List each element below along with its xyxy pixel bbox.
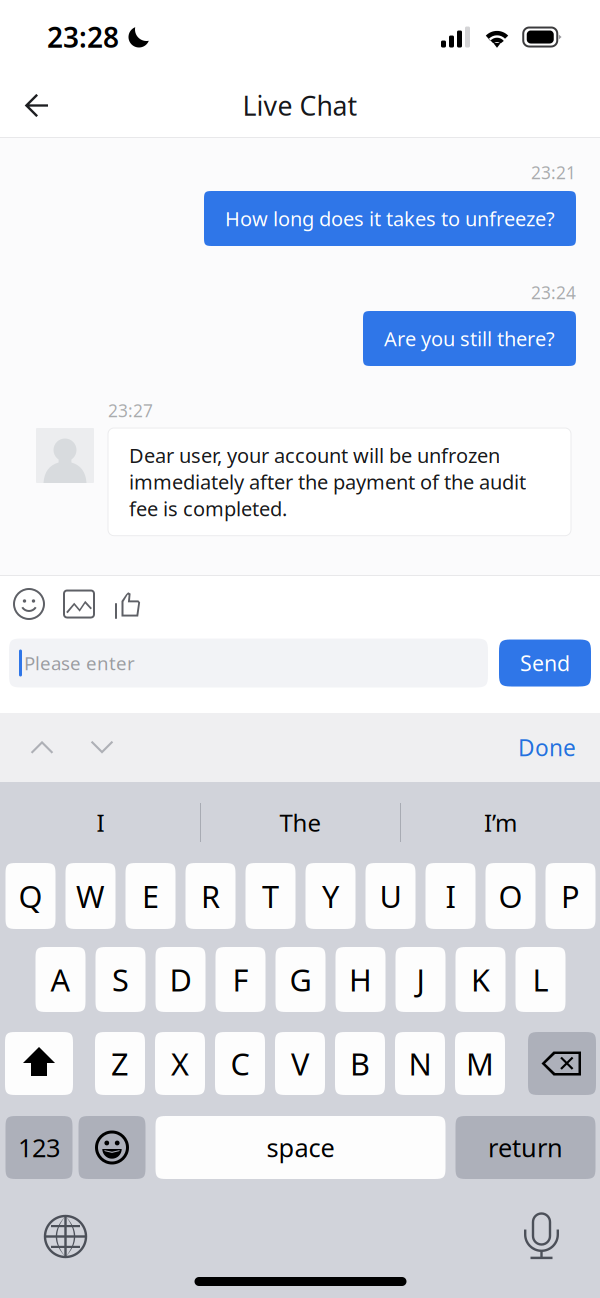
staticText: A (50, 959, 70, 1000)
staticText: Done (518, 732, 576, 762)
button[interactable]: X (155, 1032, 205, 1095)
button[interactable]: D (155, 947, 205, 1012)
staticText: Y (322, 876, 339, 916)
staticText: 23:27 (108, 399, 153, 422)
staticText: V (291, 1043, 309, 1084)
staticText: return (488, 1131, 563, 1164)
button[interactable]: H (335, 947, 385, 1012)
button[interactable]: Like (113, 588, 145, 620)
button[interactable]: K (455, 947, 505, 1012)
staticText: Z (111, 1043, 129, 1084)
button[interactable]: Previous field (26, 731, 58, 763)
button[interactable]: M (455, 1032, 505, 1095)
button[interactable]: P (545, 863, 595, 929)
staticText: W (76, 876, 105, 916)
staticText: D (169, 959, 191, 1000)
staticText: Please enter (24, 651, 135, 675)
staticText: U (379, 876, 401, 916)
staticText: C (230, 1043, 249, 1084)
button[interactable]: return (455, 1116, 595, 1179)
button[interactable]: T (245, 863, 295, 929)
button[interactable]: Back (14, 83, 62, 127)
staticText: G (289, 959, 311, 1000)
button[interactable]: J (395, 947, 445, 1012)
button[interactable]: G (275, 947, 325, 1012)
staticText: 23:24 (531, 281, 576, 304)
button[interactable]: S (95, 947, 145, 1012)
staticText: I’m (484, 807, 517, 838)
staticText: R (201, 876, 220, 916)
staticText: F (232, 959, 248, 1000)
staticText: Send (520, 649, 570, 677)
button[interactable]: L (515, 947, 565, 1012)
button[interactable]: Shift (5, 1032, 73, 1095)
staticText: I (445, 876, 455, 916)
staticText: Are you still there? (384, 325, 555, 352)
button[interactable]: Next field (86, 731, 118, 763)
button[interactable]: Emoji (13, 588, 45, 620)
staticText: H (349, 959, 372, 1000)
staticText: J (416, 959, 424, 1000)
button[interactable]: Done (512, 725, 582, 769)
staticText: M (466, 1043, 494, 1084)
staticText: 23:21 (531, 161, 576, 184)
button[interactable]: E (125, 863, 175, 929)
button[interactable]: The (201, 782, 400, 863)
button[interactable]: F (215, 947, 265, 1012)
staticText: X (171, 1043, 189, 1084)
button[interactable]: I (425, 863, 475, 929)
button[interactable]: Send (499, 639, 591, 686)
button[interactable]: Y (305, 863, 355, 929)
staticText: 23:28 (47, 18, 119, 56)
button[interactable]: A (35, 947, 85, 1012)
staticText: The (279, 807, 321, 838)
staticText: Q (18, 876, 42, 916)
button[interactable]: Z (95, 1032, 145, 1095)
staticText: P (561, 876, 580, 916)
button[interactable]: Emoji keyboard (78, 1116, 145, 1179)
staticText: Dear user, your account will be unfrozen… (129, 442, 526, 522)
staticText: 123 (18, 1131, 60, 1164)
button[interactable]: R (185, 863, 235, 929)
staticText: O (498, 876, 522, 916)
staticText: space (266, 1131, 334, 1164)
button[interactable]: I (1, 782, 200, 863)
staticText: N (408, 1043, 431, 1084)
button[interactable]: I’m (401, 782, 600, 863)
staticText: T (262, 876, 279, 916)
button[interactable]: Photo (63, 588, 95, 620)
button[interactable]: V (275, 1032, 325, 1095)
staticText: S (112, 959, 129, 1000)
button[interactable]: Dictate (516, 1209, 566, 1263)
button[interactable]: C (215, 1032, 265, 1095)
button[interactable]: Delete (528, 1032, 596, 1095)
button[interactable]: Switch keyboard (35, 1205, 95, 1267)
button[interactable]: O (485, 863, 535, 929)
button[interactable]: B (335, 1032, 385, 1095)
staticText: B (350, 1043, 370, 1084)
button[interactable]: 123 (5, 1116, 72, 1179)
staticText: I (96, 807, 104, 838)
staticText: K (471, 959, 490, 1000)
staticText: E (142, 876, 159, 916)
staticText: L (532, 959, 548, 1000)
staticText: Live Chat (242, 88, 357, 123)
button[interactable]: N (395, 1032, 445, 1095)
button[interactable]: space (155, 1116, 445, 1179)
staticText: How long does it takes to unfreeze? (225, 205, 555, 232)
button[interactable]: W (65, 863, 115, 929)
button[interactable]: U (365, 863, 415, 929)
button[interactable]: Q (5, 863, 55, 929)
